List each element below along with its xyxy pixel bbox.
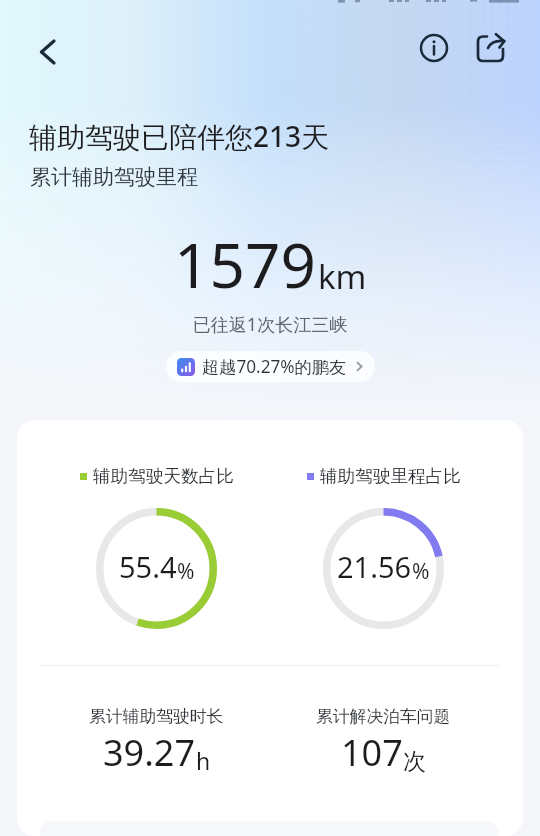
staticText: 已往返1次长江三峡 (0, 312, 540, 337)
staticText: 辅助驾驶已陪伴您213天 (29, 117, 330, 155)
staticText: 累计解决泊车问题 (316, 706, 451, 727)
staticText: % (412, 557, 430, 586)
staticText: 1579 (174, 222, 316, 306)
button[interactable]: 超越70.27%的鹏友 (166, 351, 375, 382)
button[interactable]: Info (412, 26, 456, 70)
button[interactable]: Share (468, 22, 512, 66)
staticText: 超越70.27%的鹏友 (202, 355, 347, 378)
staticText: 39.27 (103, 728, 196, 777)
staticText: 次 (403, 747, 426, 776)
staticText: 辅助驾驶里程占比 (320, 465, 461, 487)
staticText: % (177, 557, 195, 586)
staticText: 21.56 (337, 547, 412, 586)
staticText: 107 (341, 728, 403, 777)
staticText: 55.4 (119, 547, 177, 586)
staticText: 累计辅助驾驶里程 (30, 164, 198, 190)
staticText: h (196, 745, 211, 776)
staticText: km (318, 254, 367, 299)
staticText: 累计辅助驾驶时长 (89, 706, 224, 727)
staticText: 辅助驾驶天数占比 (93, 465, 234, 487)
button[interactable]: Back (28, 28, 68, 68)
